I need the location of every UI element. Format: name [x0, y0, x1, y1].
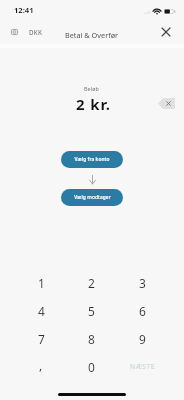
button[interactable]: 3	[117, 269, 168, 297]
button[interactable]: DKK	[11, 28, 43, 36]
staticText: Beløb	[84, 85, 100, 92]
button[interactable]: 0	[66, 353, 117, 381]
staticText: 6	[139, 303, 146, 319]
staticText: Betal & Overfør	[65, 30, 119, 40]
button[interactable]: 6	[117, 297, 168, 325]
staticText: 1	[38, 275, 45, 291]
button[interactable]: Vælg fra konto	[61, 151, 123, 168]
staticText: DKK	[29, 28, 43, 36]
staticText: 3	[139, 275, 146, 291]
button[interactable]: 2	[66, 269, 117, 297]
button[interactable]: 8	[66, 325, 117, 353]
staticText: 0	[88, 359, 95, 375]
button[interactable]: Luk	[158, 24, 174, 40]
staticText: Vælg modtager	[74, 194, 111, 201]
button[interactable]: ,	[16, 353, 66, 381]
staticText: 7	[38, 331, 45, 347]
button[interactable]: 7	[16, 325, 66, 353]
button[interactable]: Slet	[158, 98, 175, 109]
staticText: 2 kr.	[76, 94, 111, 114]
button[interactable]: 9	[117, 325, 168, 353]
staticText: 12:41	[14, 5, 34, 15]
staticText: Vælg fra konto	[74, 156, 110, 163]
button[interactable]: 5	[66, 297, 117, 325]
staticText: 5	[88, 303, 95, 319]
button[interactable]: NÆSTE	[117, 353, 168, 381]
staticText: NÆSTE	[130, 362, 155, 372]
staticText: 9	[139, 331, 146, 347]
staticText: 4	[38, 303, 45, 319]
staticText: 2	[88, 275, 95, 291]
button[interactable]: 1	[16, 269, 66, 297]
staticText: ,	[39, 357, 43, 373]
button[interactable]: Vælg modtager	[61, 189, 123, 206]
button[interactable]: 4	[16, 297, 66, 325]
staticText: 8	[88, 331, 95, 347]
